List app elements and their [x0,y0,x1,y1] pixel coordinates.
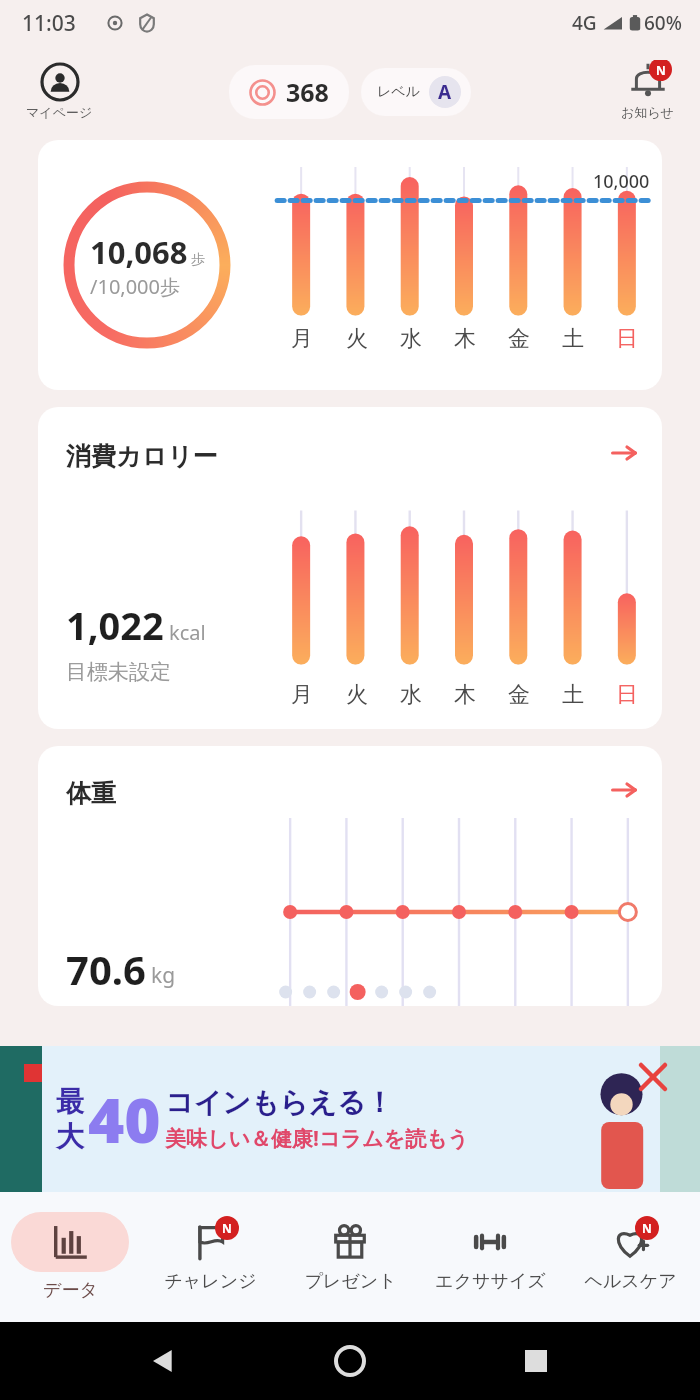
button[interactable]: マイページ [22,60,97,122]
button[interactable]: 戻る [142,1339,186,1383]
staticText: 11:03 [22,9,76,38]
staticText: 木 [454,325,476,353]
staticText: 40 [88,1077,161,1161]
staticText: 水 [400,681,422,709]
staticText: N [656,62,666,78]
staticText: 土 [562,325,584,353]
staticText: 土 [562,681,584,709]
staticText: 歩 [191,251,205,269]
staticText: チャレンジ [164,1270,257,1293]
staticText: N [222,1220,232,1236]
staticText: kcal [169,619,206,646]
staticText: 日 [616,681,638,709]
staticText: 月 [291,325,313,353]
staticText: 最 [56,1084,84,1119]
button[interactable]: 10,068 [38,140,662,390]
staticText: 大 [56,1119,84,1154]
staticText: /10,000歩 [90,273,180,300]
button[interactable]: 履歴 [514,1339,558,1383]
staticText: 目標未設定 [66,659,171,685]
button[interactable]: 広告を閉じる [636,1060,670,1094]
button[interactable]: 体重詳細 [606,772,642,808]
staticText: 体重 [66,778,116,809]
staticText: エクササイズ [435,1270,546,1293]
staticText: 4G [572,10,597,36]
staticText: 火 [346,325,368,353]
button[interactable]: エクササイズ [420,1192,560,1322]
staticText: 木 [454,681,476,709]
staticText: データ [43,1279,98,1302]
button[interactable]: ホーム [328,1339,372,1383]
staticText: kg [151,961,176,990]
staticText: マイページ [26,104,93,120]
button[interactable]: N [560,1192,700,1322]
button[interactable]: データ [0,1192,140,1322]
staticText: 金 [508,325,530,353]
staticText: 60% [644,10,682,36]
staticText: 美味しい＆健康!コラムを読もう [165,1124,469,1153]
staticText: お知らせ [621,104,674,120]
staticText: 火 [346,681,368,709]
staticText: N [642,1220,652,1236]
button[interactable]: 消費カロリー [38,407,662,729]
staticText: プレゼント [304,1270,397,1293]
staticText: レベル [377,83,420,101]
staticText: 10,000 [593,169,650,194]
button[interactable]: レベル [361,68,471,116]
staticText: 70.6 [66,942,146,996]
staticText: 月 [291,681,313,709]
staticText: コインもらえる！ [165,1085,394,1120]
button[interactable]: プレゼント [280,1192,420,1322]
staticText: 水 [400,325,422,353]
staticText: 消費カロリー [66,441,218,472]
staticText: 10,068 [90,231,188,273]
button[interactable]: 368 [229,65,349,119]
staticText: 日 [616,325,638,353]
button[interactable]: 消費カロリー詳細 [606,435,642,471]
button[interactable]: 体重 [38,746,662,1006]
staticText: 1,022 [66,599,164,651]
staticText: A [438,79,452,105]
staticText: ヘルスケア [584,1270,677,1293]
button[interactable]: お知らせ [617,60,678,122]
staticText: 金 [508,681,530,709]
button[interactable]: N [140,1192,280,1322]
staticText: 368 [286,75,329,109]
